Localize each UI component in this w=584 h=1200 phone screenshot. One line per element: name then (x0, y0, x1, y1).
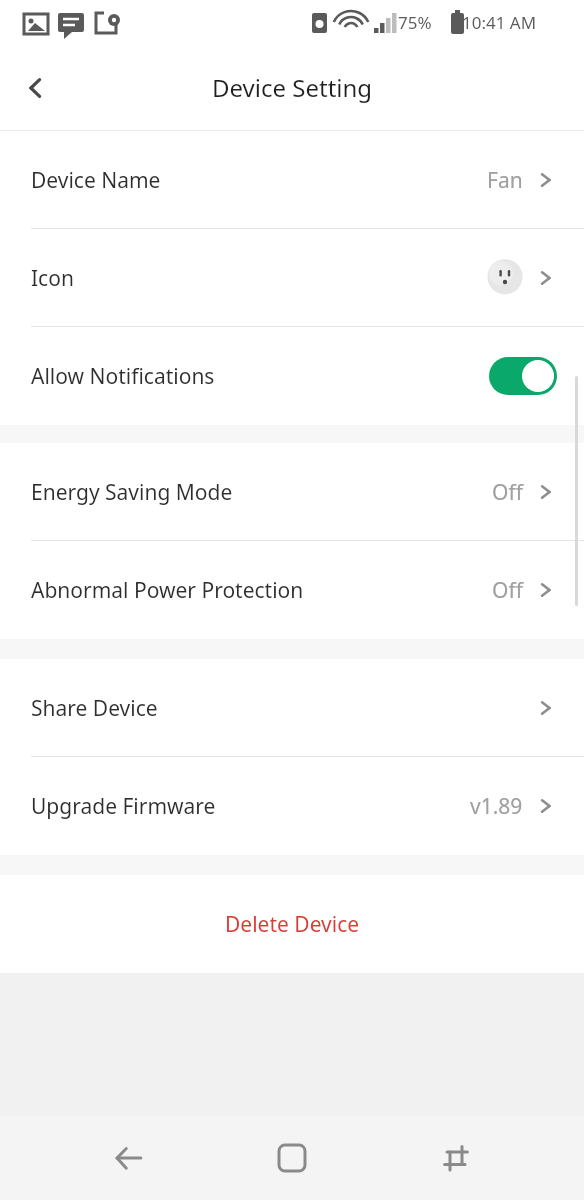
staticText: Off (492, 576, 523, 605)
staticText: Energy Saving Mode (31, 478, 233, 507)
button[interactable]: Recents (421, 1123, 491, 1193)
staticText: Allow Notifications (31, 362, 215, 391)
staticText: Off (492, 478, 523, 507)
button[interactable]: Back (94, 1123, 164, 1193)
staticText: Device Name (31, 166, 161, 195)
button[interactable]: Icon (0, 229, 584, 327)
staticText: 75% (398, 11, 432, 34)
button[interactable]: Upgrade Firmware (0, 757, 584, 855)
button[interactable]: Home (257, 1123, 327, 1193)
staticText: 10:41 AM (462, 11, 537, 34)
button[interactable]: Abnormal Power Protection (0, 541, 584, 639)
staticText: Device Setting (212, 71, 373, 104)
staticText: Icon (31, 264, 74, 293)
staticText: Share Device (31, 694, 158, 723)
staticText: Delete Device (225, 910, 360, 939)
button[interactable]: Delete Device (0, 875, 584, 973)
staticText: Fan (487, 166, 523, 195)
button[interactable]: Energy Saving Mode (0, 443, 584, 541)
button[interactable]: Back (10, 62, 62, 114)
button[interactable]: Allow Notifications (0, 327, 584, 425)
staticText: v1.89 (470, 792, 523, 821)
button[interactable]: Device Name (0, 131, 584, 229)
staticText: Upgrade Firmware (31, 792, 216, 821)
staticText: Abnormal Power Protection (31, 576, 304, 605)
button[interactable]: Share Device (0, 659, 584, 757)
